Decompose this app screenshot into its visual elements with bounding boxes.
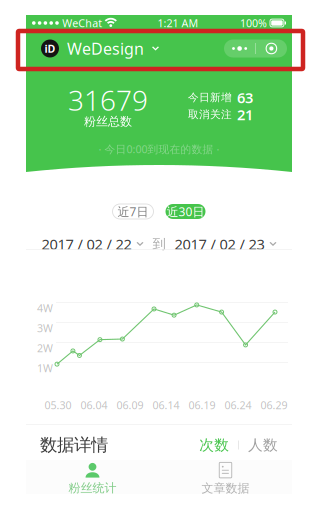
button[interactable]: More options — [224, 39, 255, 57]
button[interactable]: 2017 / 02 / 22 — [41, 234, 143, 254]
staticText: 06.04 — [80, 398, 107, 412]
staticText: 100% — [240, 16, 267, 30]
staticText: 06.29 — [260, 398, 287, 412]
staticText: 1W — [37, 361, 53, 375]
staticText: 1:21 AM — [157, 16, 198, 30]
staticText: 2017 / 02 / 22 — [41, 234, 131, 254]
staticText: 05.30 — [44, 398, 71, 412]
staticText: 2017 / 02 / 23 — [174, 234, 264, 254]
staticText: 4W — [37, 301, 53, 315]
button[interactable]: 粉丝统计 — [26, 464, 159, 494]
staticText: 近30日 — [166, 203, 204, 219]
staticText: 31679 — [68, 81, 148, 119]
staticText: 3W — [37, 321, 53, 335]
staticText: · 今日0:00到现在的数据 · — [98, 142, 219, 156]
staticText: 次数 — [199, 436, 229, 454]
button[interactable]: 2017 / 02 / 23 — [174, 234, 276, 254]
button[interactable]: iD — [41, 38, 159, 59]
staticText: 人数 — [248, 436, 278, 454]
staticText: 数据详情 — [40, 434, 108, 456]
staticText: 06.09 — [116, 398, 143, 412]
staticText: 粉丝总数 — [84, 114, 132, 129]
staticText: WeDesign — [67, 38, 144, 59]
button[interactable]: 近30日 — [165, 204, 205, 219]
staticText: 今日新增 — [188, 91, 232, 104]
staticText: 粉丝统计 — [68, 481, 116, 495]
staticText: 到 — [152, 236, 165, 252]
staticText: 近7日 — [117, 203, 148, 219]
button[interactable]: Close mini program — [256, 39, 287, 57]
staticText: WeChat — [62, 16, 102, 30]
button[interactable]: 人数 — [248, 436, 278, 454]
staticText: iD — [44, 41, 55, 56]
staticText: 文章数据 — [201, 481, 249, 496]
staticText: 06.24 — [224, 398, 251, 412]
staticText: 63 — [237, 88, 253, 107]
staticText: 06.19 — [188, 398, 215, 412]
button[interactable]: 文章数据 — [159, 464, 292, 494]
staticText: 取消关注 — [188, 108, 232, 121]
staticText: 21 — [237, 105, 253, 124]
staticText: 2W — [37, 341, 53, 355]
button[interactable]: 近7日 — [112, 204, 153, 219]
staticText: 06.14 — [152, 398, 179, 412]
button[interactable]: 次数 — [199, 436, 229, 454]
